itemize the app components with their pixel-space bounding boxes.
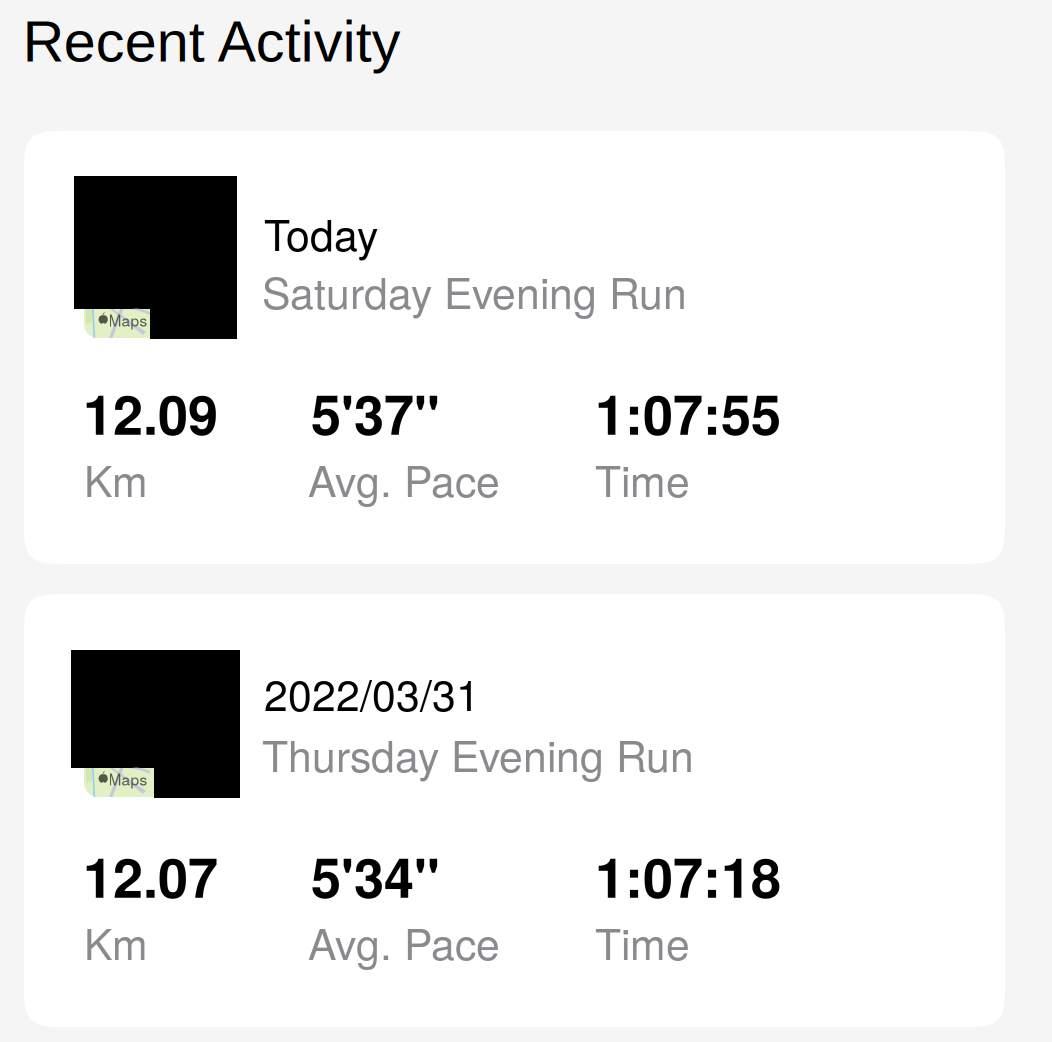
staticText: Maps <box>109 768 148 790</box>
staticText: Time <box>595 448 690 509</box>
staticText: Today <box>264 202 378 263</box>
staticText: 5'34'' <box>311 837 440 914</box>
staticText: Time <box>595 911 690 972</box>
staticText: 5'37'' <box>311 374 440 451</box>
staticText: Thursday Evening Run <box>262 723 694 784</box>
staticText: 1:07:18 <box>595 837 781 914</box>
staticText: 12.07 <box>83 837 218 914</box>
button[interactable]: Maps <box>24 594 1005 1027</box>
staticText: 12.09 <box>83 374 218 451</box>
staticText: Avg. Pace <box>308 911 500 972</box>
staticText: Saturday Evening Run <box>262 260 687 321</box>
staticText: Km <box>84 911 148 972</box>
staticText: Avg. Pace <box>308 448 500 509</box>
staticText: 2022/03/31 <box>264 662 480 723</box>
staticText: 1:07:55 <box>595 374 781 451</box>
button[interactable]: Maps <box>24 131 1005 564</box>
staticText: Recent Activity <box>23 9 401 74</box>
staticText: Km <box>84 448 148 509</box>
staticText: Maps <box>109 309 148 331</box>
